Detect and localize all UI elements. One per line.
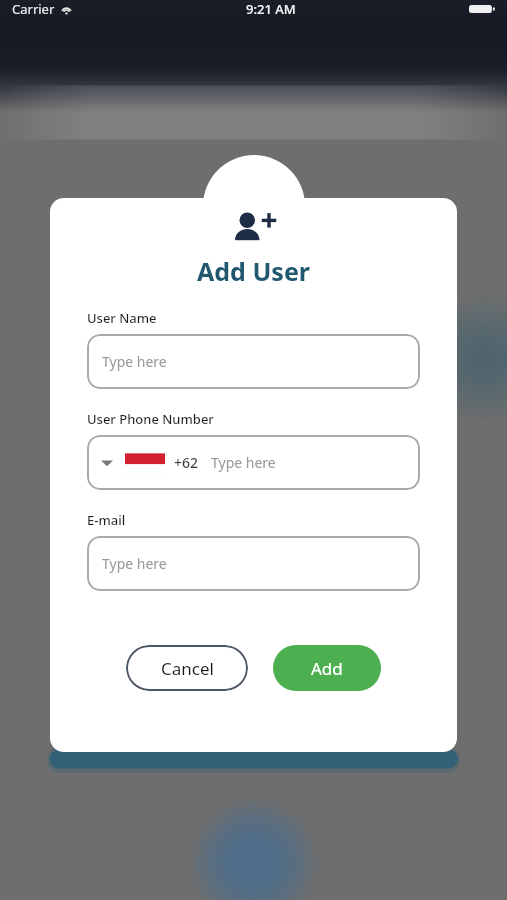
- button[interactable]: Type here: [87, 536, 420, 591]
- other: Select country code: [99, 455, 115, 471]
- button[interactable]: Type here: [87, 334, 420, 389]
- staticText: Cancel: [161, 657, 214, 680]
- staticText: Type here: [102, 352, 167, 371]
- staticText: Type here: [102, 554, 167, 573]
- staticText: User Phone Number: [87, 410, 214, 428]
- staticText: E-mail: [87, 511, 126, 529]
- staticText: Add: [311, 657, 343, 680]
- button[interactable]: Add: [273, 645, 381, 691]
- button[interactable]: Select country code: [87, 435, 420, 490]
- staticText: Carrier: [12, 0, 55, 18]
- button[interactable]: Cancel: [126, 645, 248, 691]
- staticText: Add User: [50, 254, 457, 288]
- staticText: Type here: [211, 453, 276, 472]
- staticText: +62: [174, 453, 199, 472]
- staticText: User Name: [87, 309, 157, 327]
- staticText: 9:21 AM: [246, 0, 296, 18]
